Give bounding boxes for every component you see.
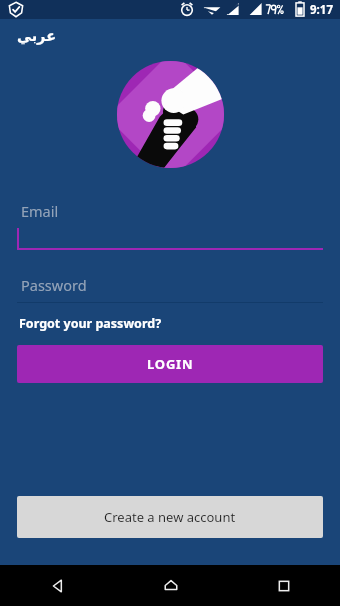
button[interactable]: عربي <box>13 26 61 47</box>
staticText: Password <box>21 275 87 295</box>
other: App logo: handshake <box>117 61 224 168</box>
staticText: Email <box>21 201 59 221</box>
staticText: Forgot your password? <box>19 315 162 332</box>
staticText: عربي <box>17 28 57 45</box>
button[interactable]: Home <box>114 565 227 606</box>
button[interactable]: Forgot your password? <box>17 312 164 335</box>
staticText: Create a new account <box>104 508 236 526</box>
staticText: LOGIN <box>147 355 194 373</box>
staticText: 9:17 <box>310 2 333 18</box>
button[interactable]: Back <box>0 565 114 606</box>
button[interactable]: Recent apps <box>227 565 340 606</box>
button[interactable]: LOGIN <box>17 345 323 383</box>
button[interactable]: Create a new account <box>17 496 323 538</box>
